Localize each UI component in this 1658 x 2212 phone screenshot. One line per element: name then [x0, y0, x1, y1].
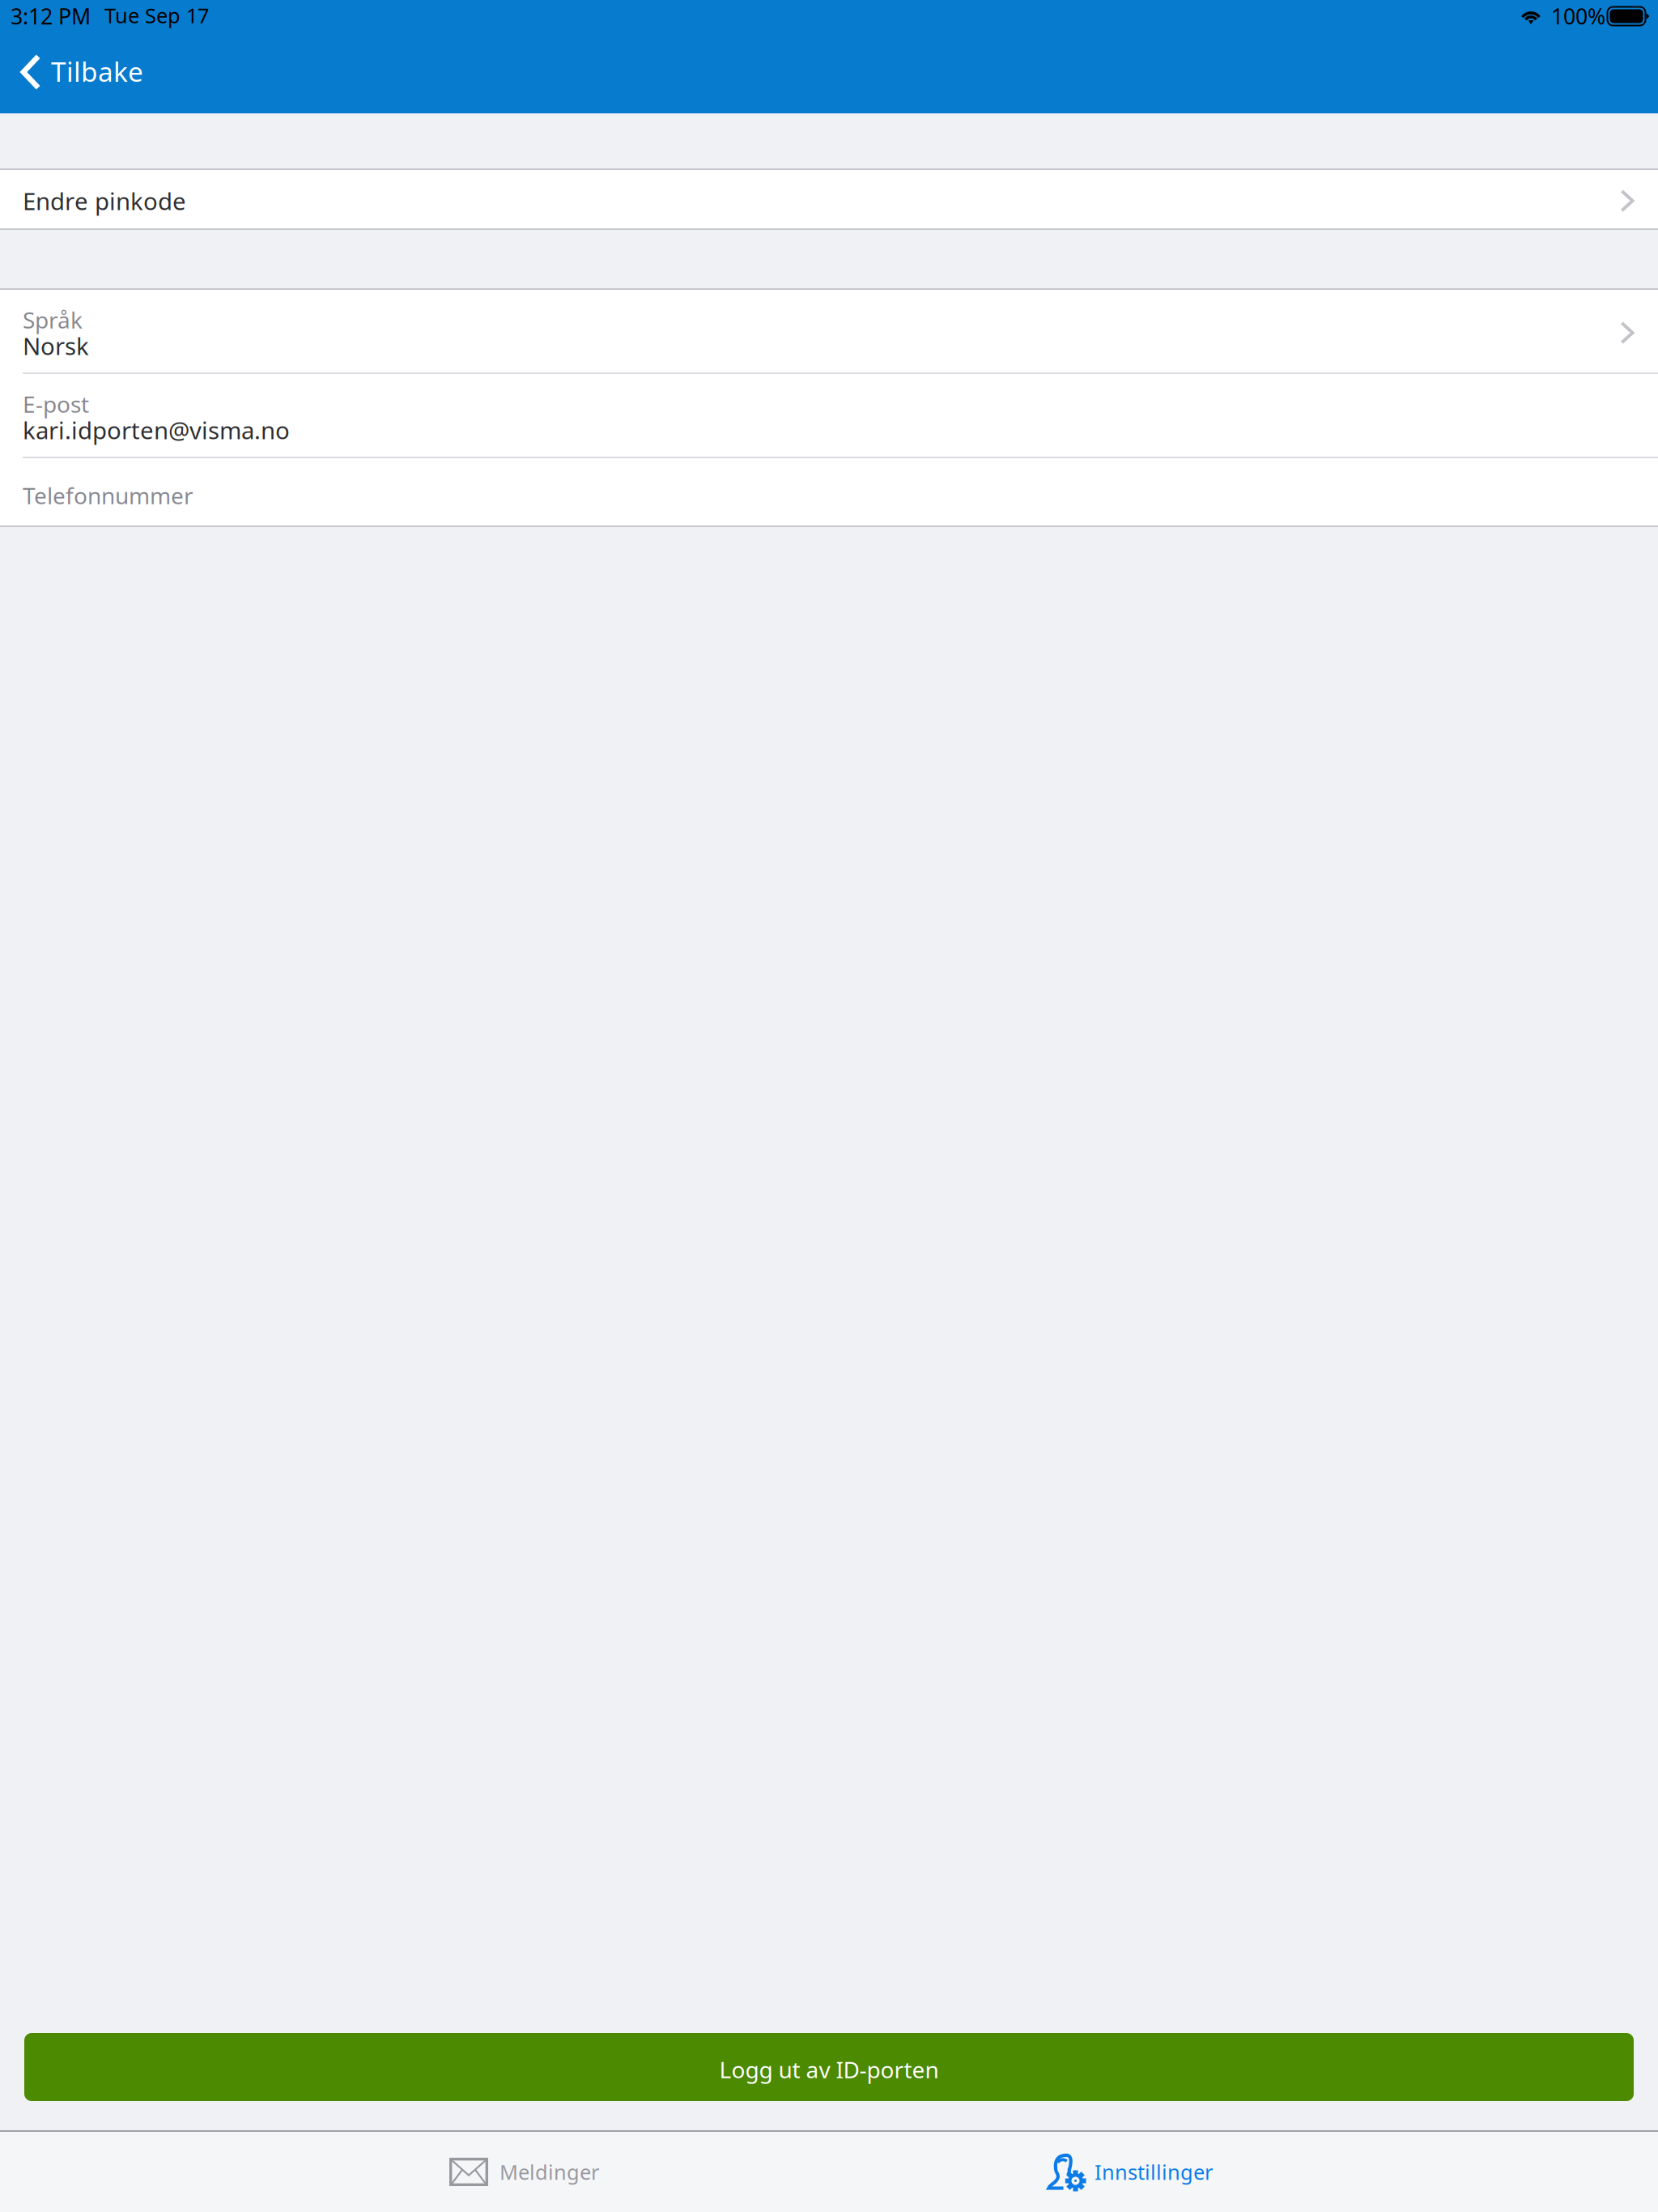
- button[interactable]: Språk: [0, 290, 1658, 372]
- staticText: 3:12 PM: [11, 2, 91, 31]
- button[interactable]: Tilbake: [0, 36, 170, 113]
- staticText: Endre pinkode: [23, 185, 186, 217]
- button[interactable]: Logg ut av ID-porten: [24, 2033, 1634, 2101]
- staticText: Meldinger: [500, 2158, 599, 2186]
- button[interactable]: Telefonnummer: [0, 458, 1658, 525]
- button[interactable]: Innstillinger: [1045, 2132, 1288, 2212]
- staticText: 100%: [1551, 2, 1605, 31]
- staticText: Språk: [23, 305, 83, 335]
- staticText: Telefonnummer: [23, 480, 193, 511]
- staticText: Logg ut av ID-porten: [719, 2054, 939, 2085]
- staticText: kari.idporten@visma.no: [23, 414, 290, 446]
- button[interactable]: Endre pinkode: [0, 170, 1658, 228]
- staticText: Tilbake: [51, 53, 143, 89]
- button[interactable]: Meldinger: [449, 2132, 692, 2212]
- staticText: Norsk: [23, 330, 89, 362]
- staticText: Tue Sep 17: [104, 2, 209, 29]
- staticText: Innstillinger: [1095, 2158, 1213, 2186]
- staticText: E-post: [23, 389, 89, 419]
- button[interactable]: E-post: [0, 374, 1658, 457]
